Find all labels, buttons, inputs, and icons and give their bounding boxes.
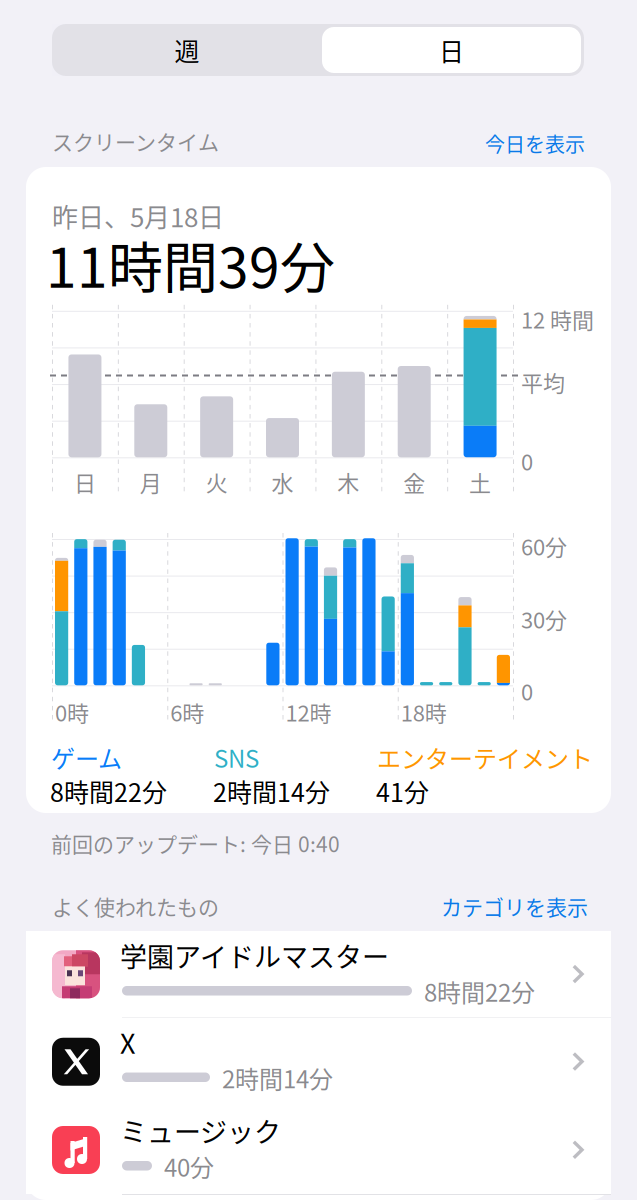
staticText: 2時間14分 [222, 1060, 333, 1095]
staticText: 平均 [521, 366, 565, 398]
staticText: 0時 [55, 696, 89, 728]
button[interactable]: 日 [322, 27, 581, 73]
staticText: 11時間39分 [46, 224, 335, 304]
button[interactable]: スクリーンタイム [52, 126, 219, 156]
button[interactable]: カテゴリを表示 [441, 891, 588, 921]
staticText: 土 [469, 466, 491, 498]
staticText: スクリーンタイム [52, 126, 219, 156]
staticText: 日 [74, 466, 96, 498]
staticText: 0 [521, 445, 533, 477]
button[interactable]: 今日を表示 [485, 129, 585, 158]
staticText: 40分 [164, 1149, 214, 1184]
staticText: SNS [214, 740, 259, 775]
staticText: 昨日、5月18日 [52, 197, 224, 235]
staticText: 12 時間 [521, 303, 594, 335]
staticText: 日 [439, 32, 464, 68]
staticText: ミュージック [120, 1111, 281, 1150]
staticText: 木 [337, 466, 359, 498]
staticText: 30分 [521, 603, 567, 635]
staticText: カテゴリを表示 [441, 891, 588, 921]
staticText: 2時間14分 [213, 773, 330, 809]
staticText: 週 [174, 32, 199, 68]
staticText: よく使われたもの [52, 891, 219, 921]
staticText: 火 [206, 466, 228, 498]
staticText: 8時間22分 [424, 974, 535, 1009]
button[interactable]: X [26, 1017, 611, 1106]
staticText: X [120, 1022, 135, 1062]
staticText: 60分 [521, 530, 567, 562]
staticText: 12時 [285, 696, 331, 728]
staticText: 8時間22分 [50, 773, 167, 809]
staticText: 18時 [401, 696, 447, 728]
staticText: 金 [403, 466, 425, 498]
staticText: 6時 [170, 696, 204, 728]
staticText: 41分 [376, 773, 429, 809]
staticText: ゲーム [51, 740, 122, 775]
staticText: エンターテイメント [377, 740, 593, 775]
staticText: 学園アイドルマスター [120, 936, 389, 975]
staticText: 今日を表示 [485, 129, 585, 158]
staticText: 月 [140, 466, 162, 498]
staticText: 0 [521, 675, 533, 707]
button[interactable]: 学園アイドルマスター [26, 931, 611, 1017]
staticText: 水 [271, 466, 293, 498]
button[interactable]: 週 [52, 24, 322, 76]
staticText: 前回のアップデート: 今日 0:40 [51, 828, 340, 858]
button[interactable]: ミュージック [26, 1106, 611, 1194]
